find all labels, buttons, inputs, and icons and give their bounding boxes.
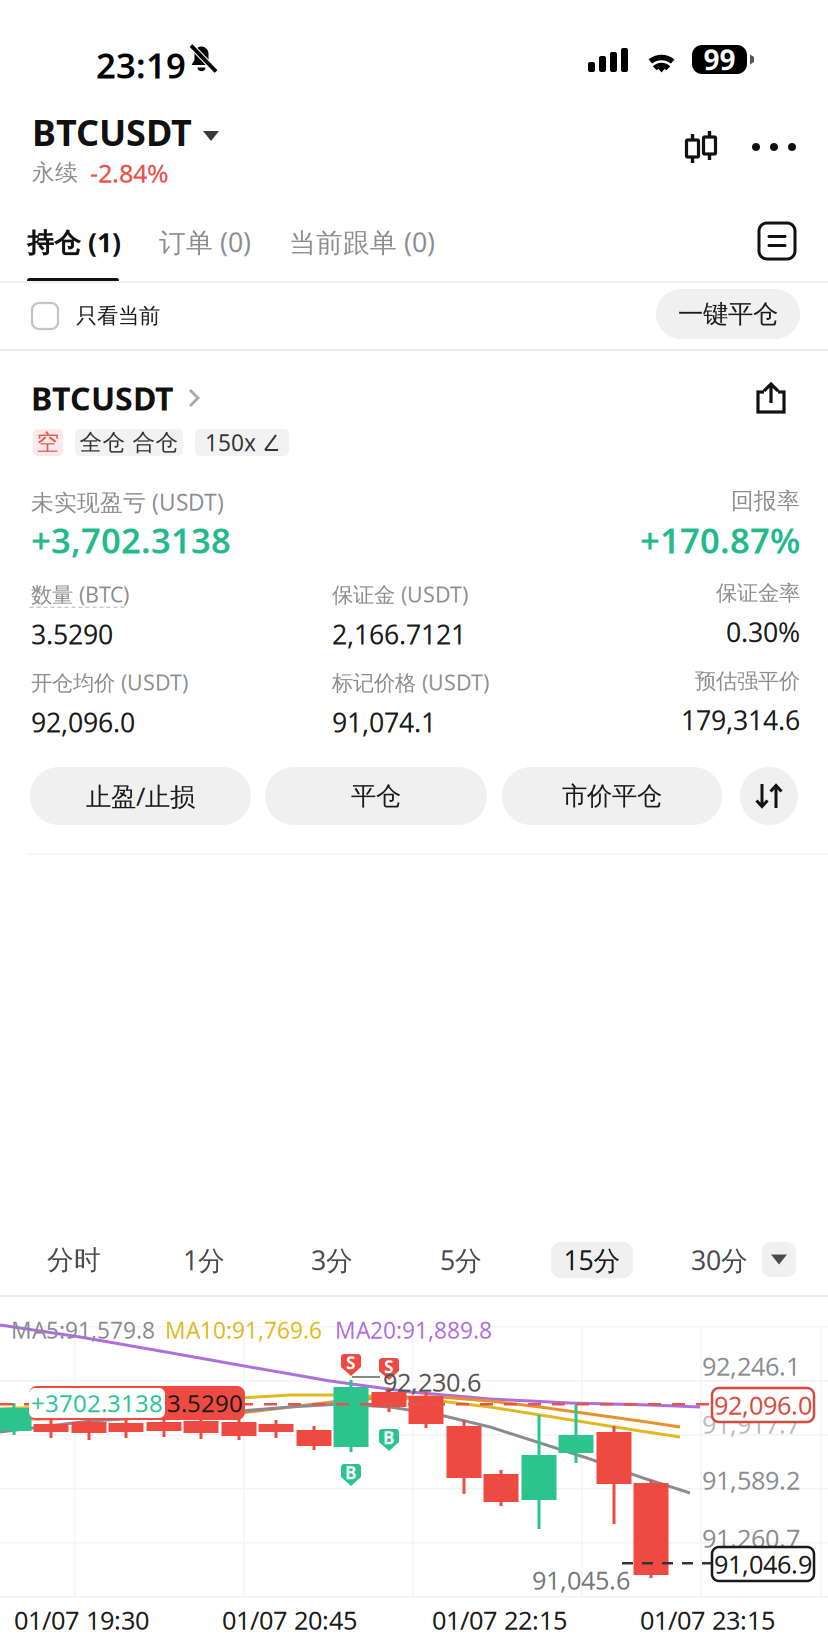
staticText: 99 xyxy=(703,41,735,78)
staticText: 保证金率 xyxy=(716,580,800,606)
staticText: 止盈/止损 xyxy=(86,779,195,813)
staticText: B xyxy=(345,1461,357,1484)
staticText: +3702.3138 xyxy=(31,1387,163,1419)
button[interactable]: Share position xyxy=(748,375,794,421)
button[interactable]: Chart xyxy=(675,121,727,173)
button[interactable]: 1分 xyxy=(183,1242,225,1278)
staticText: 5分 xyxy=(440,1242,482,1278)
staticText: 91,589.2 xyxy=(702,1463,800,1497)
staticText: 23:19 xyxy=(96,42,186,88)
staticText: 15分 xyxy=(563,1242,620,1278)
button[interactable]: 只看当前 xyxy=(32,294,202,338)
staticText: 92,246.1 xyxy=(702,1349,800,1383)
staticText: 91,260.7 xyxy=(702,1521,800,1555)
button[interactable]: 3分 xyxy=(311,1242,353,1278)
button[interactable]: 分时 xyxy=(47,1242,101,1278)
staticText: 保证金 (USDT) xyxy=(332,580,468,608)
staticText: 永续 xyxy=(32,159,78,187)
staticText: 30分 xyxy=(691,1242,748,1278)
staticText: 91,046.9 xyxy=(714,1547,812,1581)
staticText: 01/07 23:15 xyxy=(640,1603,775,1637)
staticText: 3分 xyxy=(311,1242,353,1278)
staticText: 预估强平价 xyxy=(695,668,800,694)
button[interactable]: 一键平仓 xyxy=(656,289,800,339)
staticText: +170.87% xyxy=(640,517,800,563)
staticText: 91,917.7 xyxy=(702,1407,800,1441)
staticText: MA20:91,889.8 xyxy=(335,1315,492,1345)
staticText: 01/07 20:45 xyxy=(222,1603,357,1637)
staticText: 只看当前 xyxy=(76,303,160,329)
staticText: 3.5290 xyxy=(31,616,113,652)
staticText: 空 xyxy=(36,429,59,456)
staticText: 一键平仓 xyxy=(678,298,778,329)
button[interactable]: BTCUSDT xyxy=(31,378,221,418)
button[interactable]: 持仓 (1) xyxy=(27,214,127,270)
staticText: 当前跟单 (0) xyxy=(289,224,435,260)
staticText: B xyxy=(383,1426,395,1449)
button[interactable]: 市价平仓 xyxy=(502,767,722,825)
staticText: -2.84% xyxy=(90,156,169,190)
staticText: 市价平仓 xyxy=(562,780,662,811)
staticText: 持仓 (1) xyxy=(27,224,121,260)
button[interactable]: BTCUSDT xyxy=(32,112,222,152)
staticText: 分时 xyxy=(47,1244,101,1276)
staticText: BTCUSDT xyxy=(32,108,192,156)
staticText: +3,702.3138 xyxy=(31,517,231,563)
staticText: 01/07 22:15 xyxy=(432,1603,567,1637)
staticText: 150x xyxy=(205,427,256,457)
staticText: 数量 (BTC) xyxy=(31,580,129,608)
staticText: 订单 (0) xyxy=(159,224,251,260)
staticText: 92,096.0 xyxy=(714,1388,812,1422)
button[interactable]: More intervals xyxy=(762,1242,796,1277)
staticText: BTCUSDT xyxy=(31,377,173,419)
button[interactable]: 平仓 xyxy=(265,767,487,825)
staticText: 01/07 19:30 xyxy=(14,1603,149,1637)
staticText: 1分 xyxy=(183,1242,225,1278)
button[interactable]: 5分 xyxy=(440,1242,482,1278)
button[interactable]: 30分 xyxy=(691,1242,748,1278)
staticText: 179,314.6 xyxy=(681,702,800,738)
staticText: 全仓 合仓 xyxy=(79,429,178,456)
staticText: MA5:91,579.8 xyxy=(11,1315,155,1345)
staticText: 0.30% xyxy=(726,614,800,650)
button[interactable]: 15分 xyxy=(551,1242,633,1278)
button[interactable]: Order records xyxy=(754,218,800,264)
staticText: 回报率 xyxy=(731,487,800,515)
staticText: 3.5290 xyxy=(167,1387,243,1419)
button[interactable]: 止盈/止损 xyxy=(30,767,251,825)
staticText: 91,045.6 xyxy=(532,1563,630,1597)
staticText: 2,166.7121 xyxy=(332,616,466,652)
staticText: 平仓 xyxy=(351,780,401,811)
button[interactable]: 当前跟单 (0) xyxy=(289,214,439,270)
staticText: 91,074.1 xyxy=(332,704,436,740)
staticText: S xyxy=(384,1355,394,1378)
staticText: 未实现盈亏 (USDT) xyxy=(31,487,224,517)
staticText: MA10:91,769.6 xyxy=(165,1315,322,1345)
staticText: 标记价格 (USDT) xyxy=(332,668,489,696)
staticText: 92,230.6 xyxy=(383,1365,481,1399)
button[interactable]: Reverse position xyxy=(740,767,798,825)
staticText: 开仓均价 (USDT) xyxy=(31,668,188,696)
staticText: 92,096.0 xyxy=(31,704,135,740)
button[interactable]: More options xyxy=(746,121,802,173)
button[interactable]: 订单 (0) xyxy=(159,214,253,270)
staticText: S xyxy=(346,1351,356,1374)
